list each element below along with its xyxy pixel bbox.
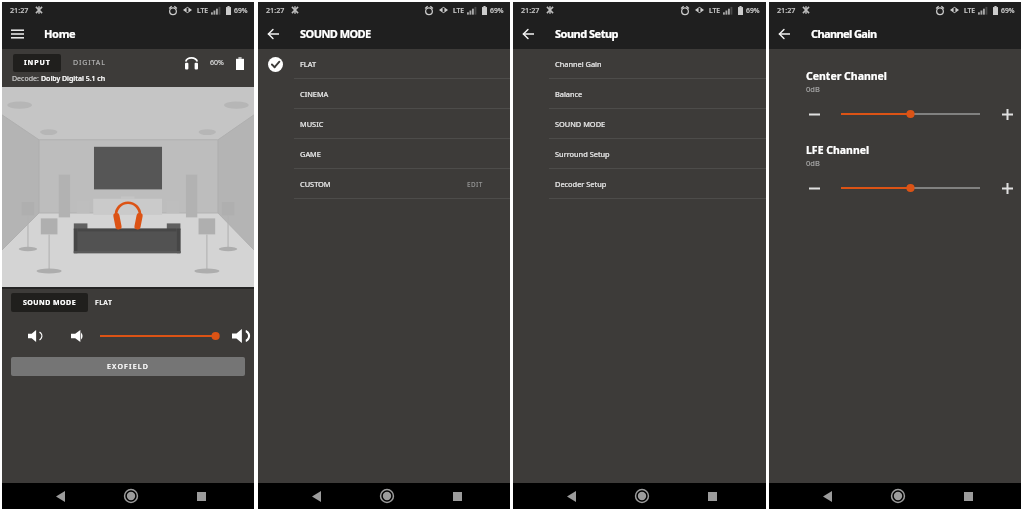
staticText: DIGITAL xyxy=(73,58,106,68)
button[interactable]: Home xyxy=(118,483,144,509)
staticText: 21:27 xyxy=(266,5,285,15)
staticText: 21:27 xyxy=(777,5,796,15)
button[interactable]: Recent apps xyxy=(444,483,470,509)
button[interactable]: FLAT xyxy=(94,293,114,312)
button[interactable]: Back xyxy=(558,483,584,509)
staticText: 60% xyxy=(210,58,224,68)
button[interactable] xyxy=(841,107,980,121)
staticText: 69% xyxy=(1001,6,1015,15)
staticText: Channel Gain xyxy=(811,26,877,41)
staticText: GAME xyxy=(300,149,321,159)
staticText: 21:27 xyxy=(521,5,540,15)
button[interactable]: CINEMA xyxy=(258,79,510,109)
button[interactable]: SOUND MODE xyxy=(11,293,88,312)
staticText: FLAT xyxy=(300,59,317,69)
button[interactable]: Back xyxy=(47,483,73,509)
staticText: Surround Setup xyxy=(555,149,610,159)
staticText: INPUT xyxy=(24,58,51,68)
button[interactable]: CUSTOM xyxy=(258,169,510,199)
staticText: Center Channel xyxy=(806,69,887,83)
button[interactable]: Recent apps xyxy=(955,483,981,509)
button[interactable]: DIGITAL xyxy=(72,54,107,72)
button[interactable]: Decoder Setup xyxy=(513,169,766,199)
staticText: CUSTOM xyxy=(300,179,331,189)
button[interactable]: Mute xyxy=(24,327,46,345)
staticText: Decoder Setup xyxy=(555,179,607,189)
staticText: 21:27 xyxy=(10,5,29,15)
staticText: FLAT xyxy=(95,298,113,308)
staticText: 0dB xyxy=(806,158,820,168)
button[interactable] xyxy=(100,328,217,344)
staticText: SOUND MODE xyxy=(23,298,77,308)
staticText: LTE xyxy=(709,6,721,15)
staticText: LTE xyxy=(453,6,465,15)
button[interactable]: GAME xyxy=(258,139,510,169)
button[interactable]: INPUT xyxy=(13,54,61,72)
other: Headphones connected xyxy=(185,55,198,71)
button[interactable]: Channel Gain xyxy=(513,49,766,79)
staticText: 69% xyxy=(746,6,760,15)
button[interactable]: Home xyxy=(629,483,655,509)
staticText: Decode: xyxy=(12,74,41,84)
button[interactable]: Volume up xyxy=(229,327,251,345)
staticText: Dolby Digital 5.1 ch xyxy=(41,74,106,84)
button[interactable]: SOUND MODE xyxy=(513,109,766,139)
button[interactable] xyxy=(841,181,980,195)
button[interactable]: Surround Setup xyxy=(513,139,766,169)
button[interactable]: Recent apps xyxy=(188,483,214,509)
staticText: 69% xyxy=(490,6,504,15)
button[interactable]: Back xyxy=(814,483,840,509)
button[interactable]: Navigate back xyxy=(769,18,800,49)
button[interactable]: Increase gain xyxy=(999,180,1015,196)
staticText: 0dB xyxy=(806,84,820,94)
staticText: Balance xyxy=(555,89,583,99)
button[interactable]: Open navigation menu xyxy=(2,18,33,49)
button[interactable]: Navigate back xyxy=(513,18,544,49)
button[interactable]: Recent apps xyxy=(699,483,725,509)
button[interactable]: Decrease gain xyxy=(806,106,822,122)
staticText: CINEMA xyxy=(300,89,329,99)
button[interactable]: Back xyxy=(303,483,329,509)
button[interactable]: Home xyxy=(885,483,911,509)
button[interactable]: MUSIC xyxy=(258,109,510,139)
button[interactable]: FLAT xyxy=(258,49,510,79)
staticText: Home xyxy=(44,26,76,41)
staticText: EXOFIELD xyxy=(107,362,150,372)
staticText: LFE Channel xyxy=(806,143,870,157)
button[interactable]: Home xyxy=(374,483,400,509)
button[interactable]: Increase gain xyxy=(999,106,1015,122)
staticText: LTE xyxy=(197,6,209,15)
button[interactable]: Volume down xyxy=(68,327,86,345)
staticText: Channel Gain xyxy=(555,59,602,69)
staticText: MUSIC xyxy=(300,119,324,129)
staticText: EDIT xyxy=(467,180,483,189)
staticText: Sound Setup xyxy=(555,26,619,41)
staticText: SOUND MODE xyxy=(300,26,371,41)
button[interactable]: Balance xyxy=(513,79,766,109)
staticText: LTE xyxy=(964,6,976,15)
button[interactable]: Decrease gain xyxy=(806,180,822,196)
staticText: SOUND MODE xyxy=(555,119,606,129)
staticText: 69% xyxy=(234,6,248,15)
button[interactable]: Navigate back xyxy=(258,18,289,49)
button[interactable]: EXOFIELD xyxy=(11,357,245,376)
